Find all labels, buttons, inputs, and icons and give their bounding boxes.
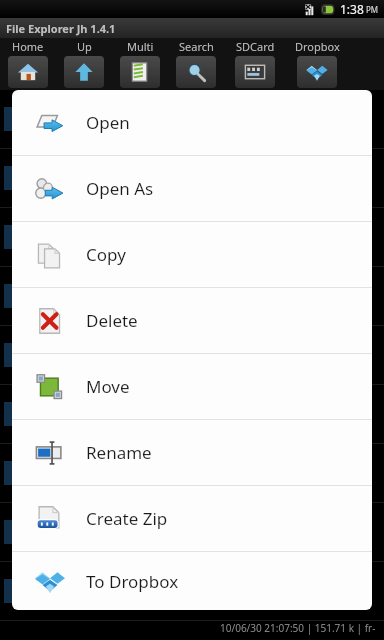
staticText: Search <box>179 39 214 54</box>
staticText: Up <box>77 39 92 54</box>
staticText: Rename <box>86 441 152 464</box>
staticText: 10/06/30 21:07:50 | 151.71 k | fr- <box>220 621 376 635</box>
staticText: Move <box>86 375 130 398</box>
staticText: Create Zip <box>86 507 168 530</box>
staticText: PM <box>366 4 379 15</box>
staticText: SDCard <box>236 39 275 54</box>
staticText: Open As <box>86 177 154 200</box>
button[interactable]: Rename <box>12 420 372 485</box>
staticText: Copy <box>86 243 126 266</box>
staticText: Dropbox <box>295 39 340 54</box>
button[interactable]: SDCard <box>235 56 275 88</box>
button[interactable]: Delete <box>12 288 372 353</box>
staticText: 1:38 <box>340 1 364 17</box>
button[interactable]: Open As <box>12 156 372 221</box>
staticText: Home <box>12 39 44 54</box>
button[interactable]: To Dropbox <box>12 552 372 610</box>
staticText: Open <box>86 111 130 134</box>
staticText: Delete <box>86 309 138 332</box>
staticText: File Explorer Jh 1.4.1 <box>6 21 116 36</box>
staticText: Multi <box>127 39 154 54</box>
button[interactable]: Move <box>12 354 372 419</box>
button[interactable]: Open <box>12 90 372 155</box>
button[interactable]: Copy <box>12 222 372 287</box>
button[interactable]: Search <box>176 56 216 88</box>
button[interactable]: Multi <box>120 56 160 88</box>
button[interactable]: Home <box>8 56 48 88</box>
button[interactable]: Dropbox <box>297 56 337 88</box>
button[interactable]: Up <box>64 56 104 88</box>
staticText: To Dropbox <box>86 570 179 593</box>
button[interactable]: Create Zip <box>12 486 372 551</box>
